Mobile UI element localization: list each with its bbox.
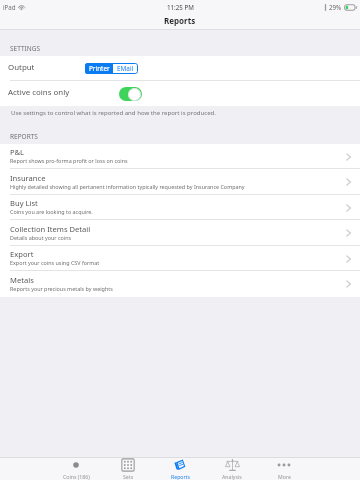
staticText: Reports — [171, 473, 190, 480]
staticText: Active coins only — [8, 87, 70, 98]
button[interactable]: Sets — [102, 458, 154, 480]
button[interactable]: Insurance — [0, 169, 360, 195]
button[interactable]: Reports — [154, 458, 206, 480]
staticText: Export your coins using CSV format — [10, 259, 100, 266]
staticText: Sets — [123, 473, 134, 480]
button[interactable]: Export — [0, 246, 360, 271]
staticText: iPad — [3, 3, 16, 11]
button[interactable]: Output — [0, 56, 360, 81]
staticText: Use settings to control what is reported… — [11, 109, 216, 117]
staticText: SETTINGS — [10, 44, 40, 53]
staticText: REPORTS — [10, 132, 38, 141]
staticText: Coins you are looking to acquire. — [10, 208, 93, 215]
staticText: Printer — [89, 64, 110, 73]
staticText: Output — [8, 62, 35, 73]
button[interactable]: Printer — [85, 63, 113, 74]
button[interactable]: Active coins only — [0, 81, 360, 106]
staticText: Reports your precious metals by weights — [10, 285, 113, 292]
staticText: Analysis — [222, 473, 242, 480]
staticText: Export — [10, 249, 34, 259]
button[interactable]: Active coins only toggle — [119, 87, 142, 101]
staticText: Buy List — [10, 198, 38, 208]
button[interactable]: Buy List — [0, 195, 360, 220]
button[interactable]: Metals — [0, 271, 360, 297]
staticText: Reports — [164, 15, 196, 26]
staticText: Metals — [10, 275, 34, 285]
staticText: Highly detailed showing all pertanent in… — [10, 183, 245, 190]
staticText: Insurance — [10, 173, 46, 183]
button[interactable]: Collection Items Detail — [0, 220, 360, 246]
button[interactable]: EMail — [113, 63, 138, 74]
staticText: Report shows pro-forma profit or loss on… — [10, 157, 128, 164]
button[interactable]: Coins (186) — [50, 458, 102, 480]
button[interactable]: More — [258, 458, 310, 480]
button[interactable]: Analysis — [206, 458, 258, 480]
staticText: Details about your coins — [10, 234, 72, 241]
staticText: P&L — [10, 147, 25, 157]
staticText: 11:25 PM — [167, 3, 194, 11]
staticText: Collection Items Detail — [10, 224, 91, 234]
staticText: More — [278, 473, 291, 480]
staticText: 29% — [329, 3, 342, 11]
staticText: Coins (186) — [63, 473, 90, 480]
button[interactable]: P&L — [0, 144, 360, 169]
staticText: EMail — [117, 64, 134, 73]
